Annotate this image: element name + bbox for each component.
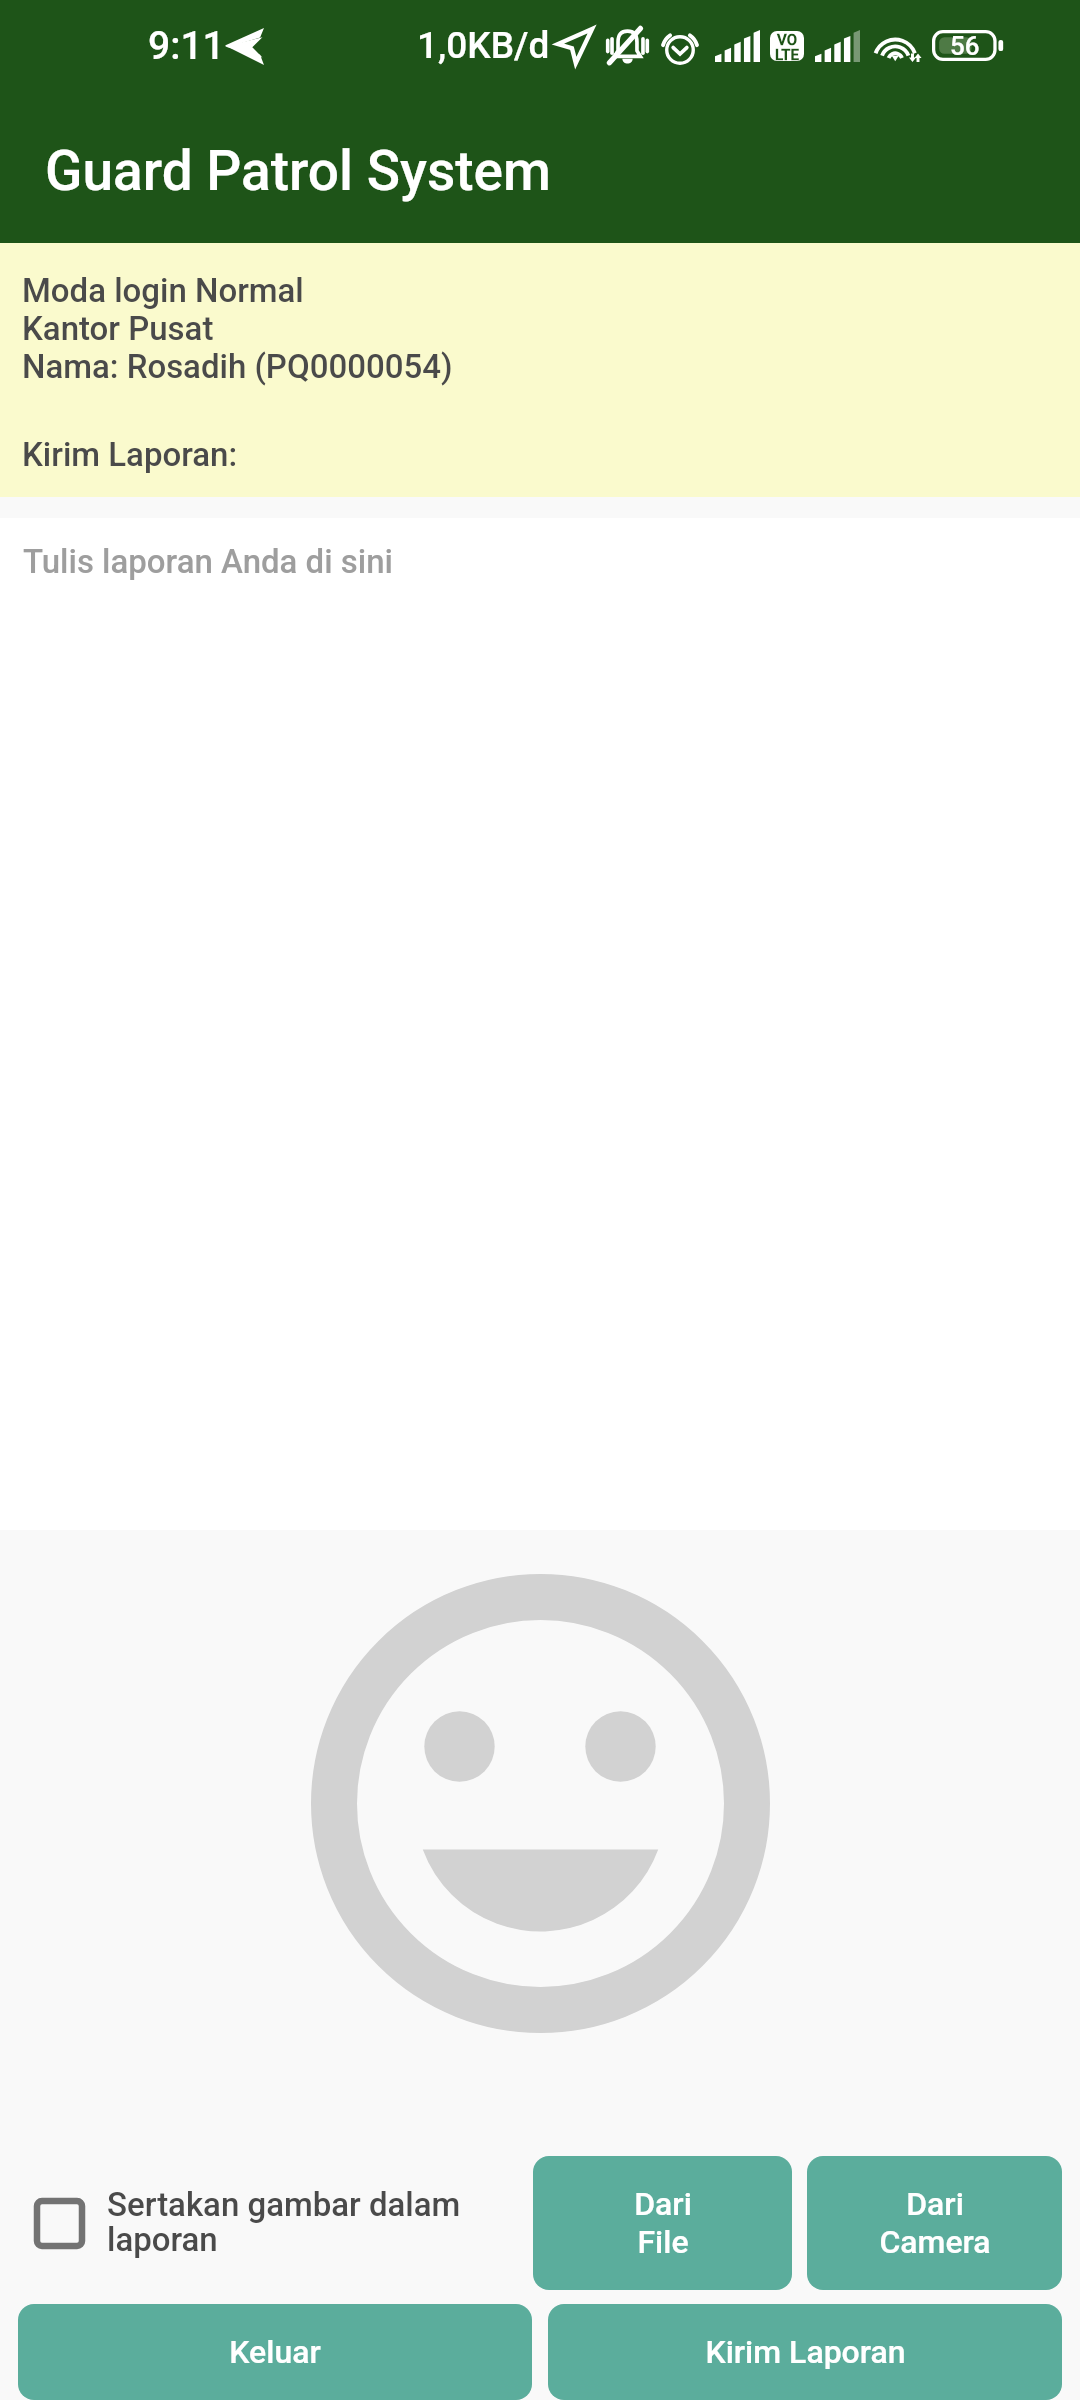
staticText: Kantor Pusat <box>22 309 214 348</box>
button[interactable]: Dari <box>807 2156 1062 2290</box>
staticText: 1,0KB/d <box>417 24 550 67</box>
button[interactable]: Keluar <box>18 2304 532 2400</box>
staticText: Guard Patrol System <box>45 139 551 203</box>
staticText: 9:11 <box>148 23 225 69</box>
staticText: Dari <box>906 2185 964 2223</box>
button[interactable]: Sertakan gambar dalam <box>0 2156 533 2290</box>
button[interactable]: Dari <box>533 2156 792 2290</box>
staticText: VO LTE <box>775 31 799 61</box>
button[interactable]: Tulis laporan Anda di sini <box>0 518 1080 1530</box>
staticText: Keluar <box>229 2333 321 2371</box>
button[interactable]: Kirim Laporan <box>548 2304 1062 2400</box>
staticText: Tulis laporan Anda di sini <box>23 542 393 581</box>
staticText: Kirim Laporan: <box>22 435 238 474</box>
other: Image placeholder <box>311 1574 770 2033</box>
staticText: laporan <box>107 2220 218 2259</box>
staticText: 56 <box>950 31 980 61</box>
staticText: Sertakan gambar dalam <box>107 2185 461 2224</box>
staticText: Kirim Laporan <box>705 2333 906 2371</box>
staticText: Moda login Normal <box>22 271 304 310</box>
staticText: File <box>637 2223 689 2261</box>
staticText: Camera <box>879 2223 991 2261</box>
staticText: Nama: Rosadih (PQ0000054) <box>22 347 453 386</box>
staticText: Dari <box>634 2185 692 2223</box>
